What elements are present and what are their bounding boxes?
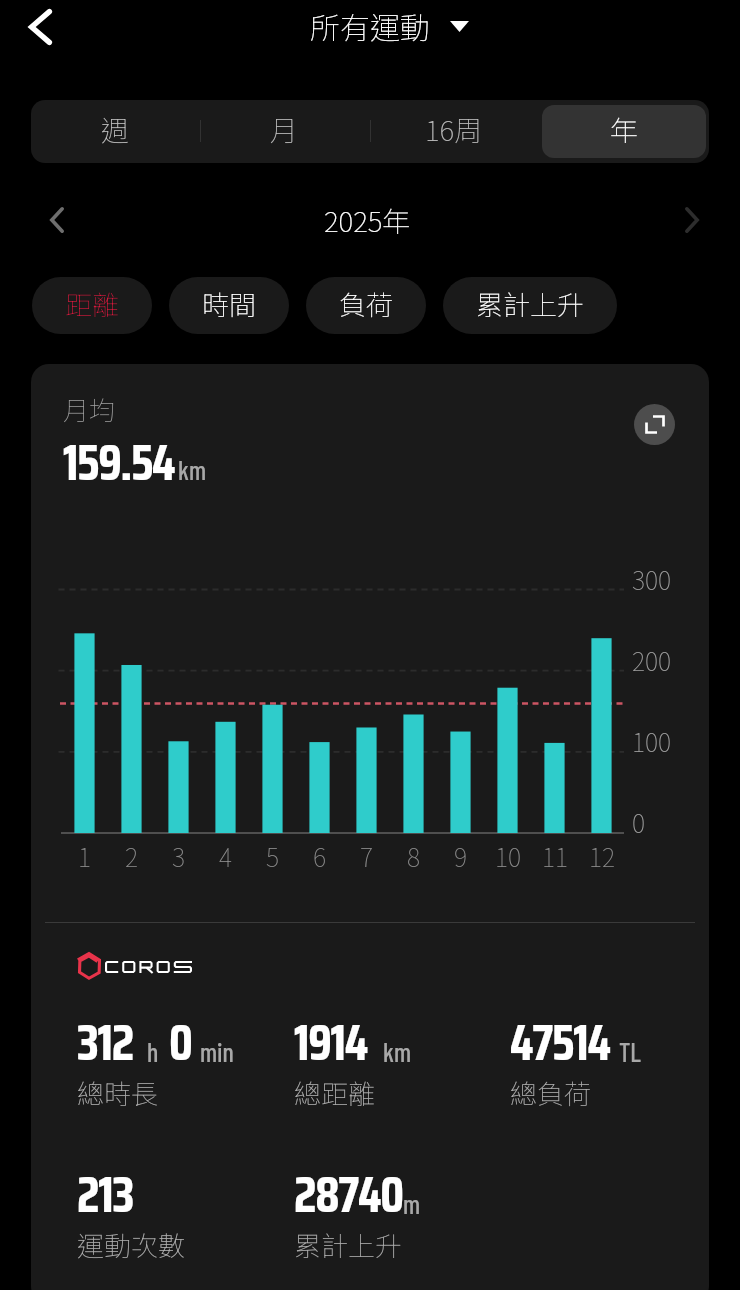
button[interactable]: 16周: [372, 105, 536, 158]
staticText: 所有運動: [310, 4, 430, 47]
staticText: km: [178, 454, 207, 485]
staticText: 年: [610, 109, 639, 150]
staticText: 47514: [510, 1003, 610, 1082]
staticText: 2: [125, 838, 139, 874]
staticText: 100: [632, 723, 672, 759]
button[interactable]: Next year: [668, 196, 716, 244]
staticText: 6: [313, 838, 327, 874]
staticText: 總負荷: [510, 1073, 591, 1112]
staticText: 7: [360, 838, 374, 874]
staticText: 月均: [63, 390, 116, 428]
staticText: 11: [542, 838, 569, 874]
button[interactable]: 累計上升: [443, 277, 617, 334]
staticText: 3: [172, 838, 186, 874]
button[interactable]: Back: [6, 0, 74, 61]
staticText: 總距離: [294, 1073, 375, 1112]
staticText: 累計上升: [294, 1225, 402, 1264]
staticText: 12: [589, 838, 616, 874]
staticText: 159.54: [63, 423, 174, 502]
staticText: min: [200, 1036, 234, 1067]
button[interactable]: Expand chart: [634, 404, 675, 445]
staticText: 4: [219, 838, 233, 874]
staticText: 8: [407, 838, 421, 874]
button[interactable]: 時間: [169, 277, 289, 334]
staticText: 2025年: [324, 200, 411, 241]
staticText: 週: [101, 109, 130, 150]
staticText: 28740: [294, 1155, 403, 1234]
button[interactable]: 負荷: [306, 277, 426, 334]
button[interactable]: 週: [34, 105, 197, 158]
staticText: m: [403, 1188, 421, 1219]
button[interactable]: 月: [203, 105, 366, 158]
button[interactable]: Change sport filter: [440, 9, 478, 43]
staticText: 213: [77, 1155, 133, 1234]
staticText: 1: [78, 838, 92, 874]
staticText: 累計上升: [476, 284, 584, 323]
button[interactable]: Previous year: [33, 196, 81, 244]
button[interactable]: 距離: [32, 277, 152, 334]
button[interactable]: 所有運動: [310, 4, 430, 47]
staticText: 時間: [202, 284, 256, 323]
staticText: TL: [619, 1036, 641, 1067]
staticText: 負荷: [339, 284, 393, 323]
staticText: 0: [169, 1003, 192, 1082]
staticText: 月: [270, 109, 299, 150]
staticText: h: [147, 1036, 159, 1067]
staticText: 16周: [425, 109, 483, 150]
staticText: 運動次數: [77, 1225, 185, 1264]
staticText: 10: [495, 838, 522, 874]
staticText: 1914: [294, 1003, 367, 1082]
staticText: km: [383, 1036, 412, 1067]
staticText: 總時長: [77, 1073, 158, 1112]
staticText: 0: [632, 804, 646, 840]
staticText: 300: [632, 561, 672, 597]
staticText: 5: [266, 838, 280, 874]
staticText: 距離: [65, 284, 119, 323]
staticText: 9: [454, 838, 468, 874]
staticText: 312: [77, 1003, 133, 1082]
button[interactable]: 年: [542, 105, 706, 158]
staticText: 200: [632, 642, 672, 678]
